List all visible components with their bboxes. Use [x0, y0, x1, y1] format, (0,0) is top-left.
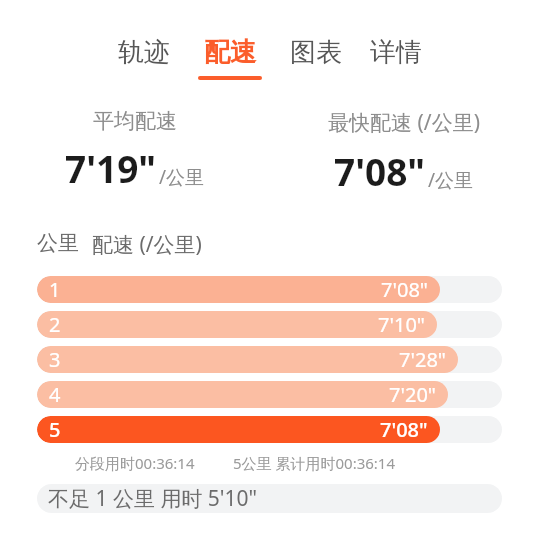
button[interactable]: Kilometer 2 pace 7'10"	[37, 311, 502, 338]
staticText: 最快配速 (/公里)	[328, 108, 480, 137]
staticText: 分段用时00:36:14	[75, 453, 195, 473]
staticText: 不足 1 公里 用时 5'10"	[48, 484, 258, 513]
staticText: 4	[49, 381, 61, 408]
staticText: 详情	[370, 36, 422, 69]
staticText: 7'19"	[65, 143, 157, 193]
staticText: 轨迹	[118, 36, 170, 69]
button[interactable]: 配速	[192, 36, 268, 80]
staticText: 7'08"	[380, 416, 428, 443]
staticText: 7'08"	[381, 276, 428, 303]
staticText: 7'10"	[378, 311, 425, 338]
staticText: 配速	[204, 36, 256, 69]
staticText: 公里	[37, 230, 79, 256]
button[interactable]: 详情	[364, 36, 428, 76]
button[interactable]: 图表	[284, 36, 348, 76]
button[interactable]: 不足 1 公里 用时 5'10"	[37, 484, 502, 513]
button[interactable]: Kilometer 3 pace 7'28"	[37, 346, 502, 373]
staticText: 配速 (/公里)	[92, 230, 202, 259]
staticText: 5	[49, 416, 61, 443]
staticText: 7'20"	[389, 381, 436, 408]
staticText: 7'08"	[334, 146, 426, 196]
staticText: /公里	[428, 167, 474, 193]
staticText: 图表	[290, 36, 342, 69]
staticText: 2	[49, 311, 61, 338]
staticText: 1	[49, 276, 61, 303]
button[interactable]: 轨迹	[112, 36, 176, 76]
staticText: 平均配速	[93, 108, 177, 134]
button[interactable]: Kilometer 1 pace 7'08"	[37, 276, 502, 303]
staticText: /公里	[159, 164, 205, 190]
staticText: 7'28"	[399, 346, 446, 373]
button[interactable]: Kilometer 4 pace 7'20"	[37, 381, 502, 408]
staticText: 3	[49, 346, 61, 373]
staticText: 5公里 累计用时00:36:14	[233, 453, 396, 473]
button[interactable]: Kilometer 5 pace 7'08"	[37, 416, 502, 443]
